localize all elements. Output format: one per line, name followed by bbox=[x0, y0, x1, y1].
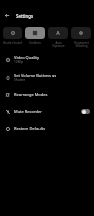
staticText: 1080p bbox=[14, 60, 24, 64]
staticText: Settings bbox=[16, 13, 34, 19]
button[interactable]: Back bbox=[0, 9, 14, 22]
staticText: Rearrange Modes bbox=[14, 92, 48, 97]
staticText: Auto Exposure bbox=[52, 41, 65, 48]
staticText: Set Volume Buttons as bbox=[14, 73, 57, 78]
button[interactable]: Gridlines bbox=[25, 27, 45, 45]
staticText: Shutter bbox=[14, 78, 26, 82]
button[interactable]: Fingerprint Shooting bbox=[71, 27, 91, 48]
staticText: Fingerprint Shooting bbox=[74, 41, 89, 48]
button[interactable]: Shutter Sound bbox=[3, 27, 22, 45]
button[interactable]: Restore Defaults bbox=[0, 120, 94, 137]
staticText: Video Quality bbox=[14, 55, 39, 60]
staticText: Gridlines bbox=[29, 41, 41, 45]
button[interactable]: Video Quality bbox=[0, 50, 94, 68]
button[interactable]: Set Volume Buttons as bbox=[0, 68, 94, 86]
staticText: Mute Recorder bbox=[14, 109, 42, 114]
button[interactable]: Auto Exposure bbox=[48, 27, 68, 48]
button[interactable]: Mute Recorder bbox=[0, 103, 94, 120]
staticText: Shutter Sound bbox=[3, 41, 22, 45]
button[interactable]: Rearrange Modes bbox=[0, 86, 94, 103]
staticText: Restore Defaults bbox=[14, 126, 46, 131]
